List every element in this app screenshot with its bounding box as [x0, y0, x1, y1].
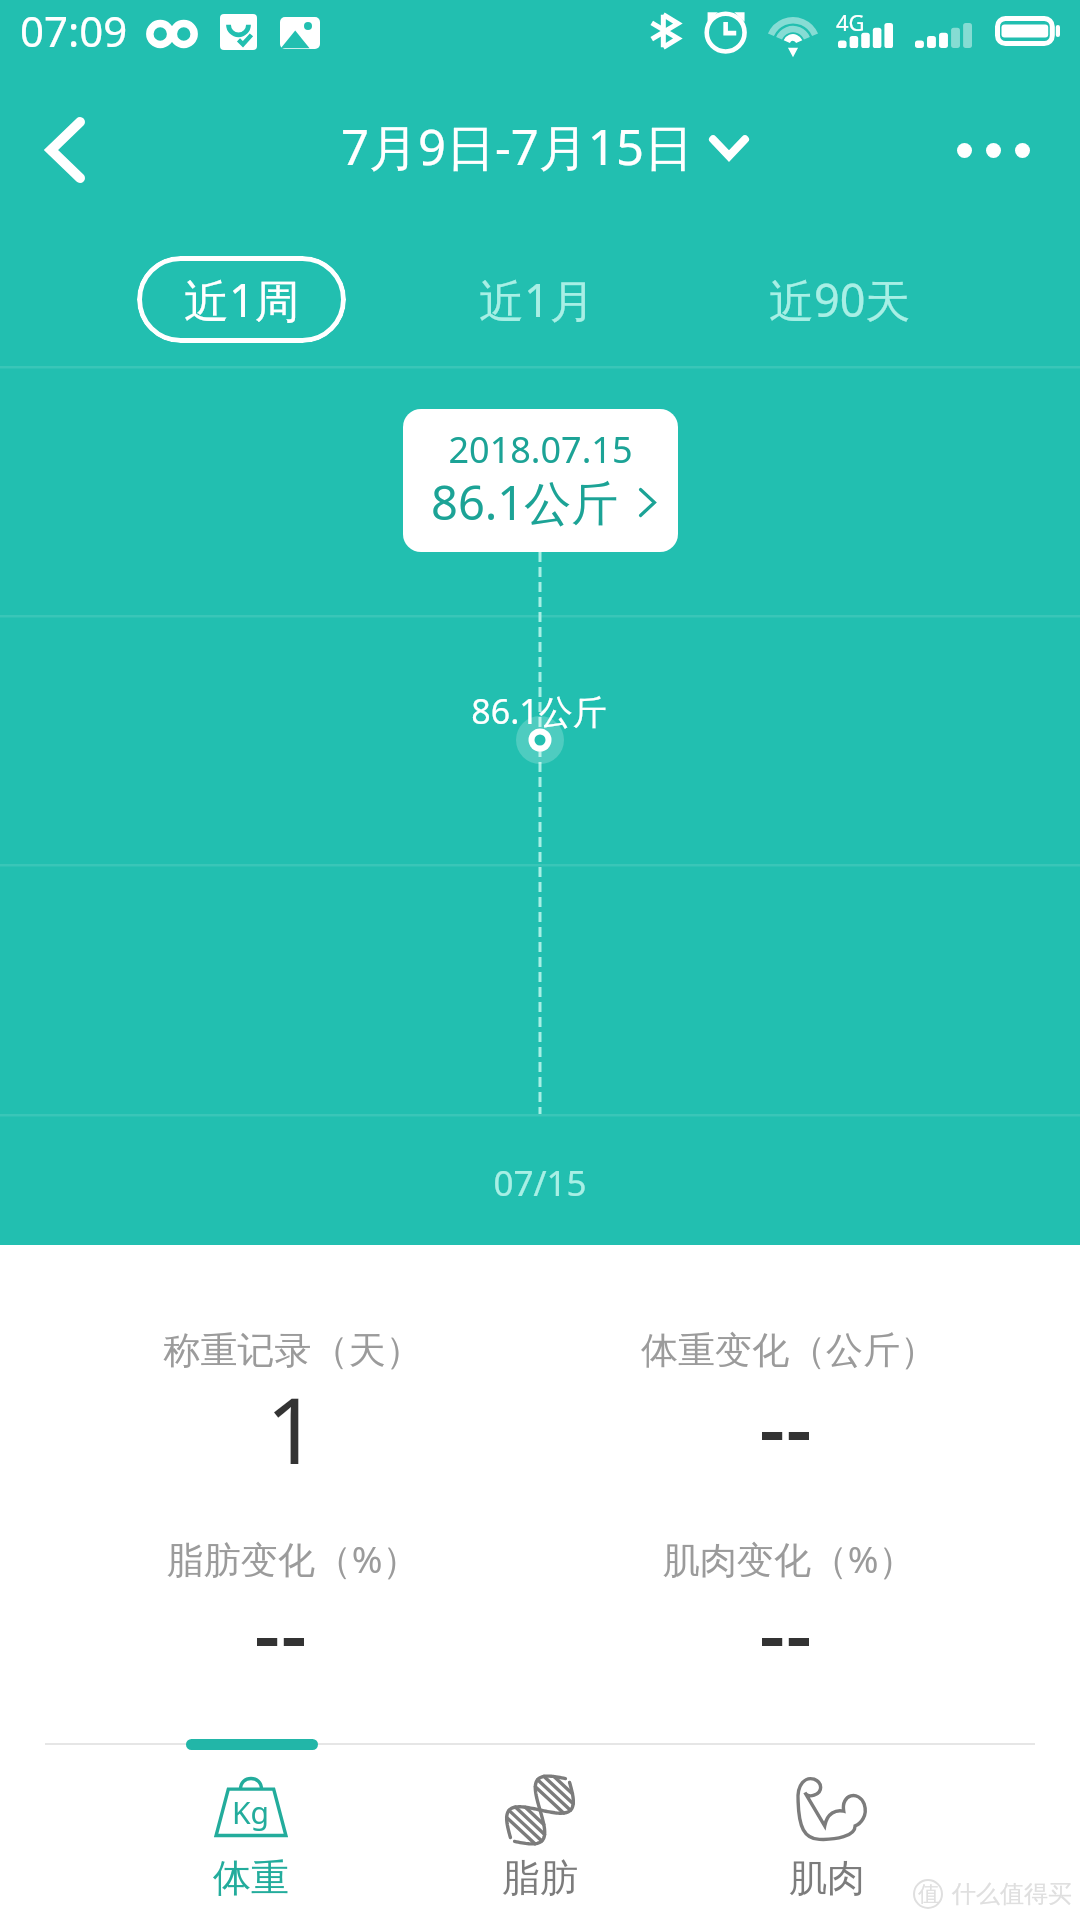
staticText: 值 [918, 1881, 939, 1907]
staticText: 近1月 [479, 269, 595, 330]
button[interactable]: 脂肪 [396, 1750, 684, 1920]
staticText: 7月9日-7月15日 [341, 113, 693, 180]
button[interactable]: Kg [107, 1750, 395, 1920]
button[interactable]: 称重记录（天） [43, 1327, 543, 1477]
button[interactable]: 近1月 [432, 256, 641, 343]
staticText: 近1周 [184, 269, 300, 330]
button[interactable]: 近1周 [137, 256, 346, 343]
staticText: 近90天 [769, 269, 911, 330]
staticText: 07:09 [20, 2, 128, 59]
staticText: 1 [42, 1366, 542, 1491]
staticText: 86.1公斤 [471, 688, 607, 734]
button[interactable]: 肌肉变化（%） [539, 1533, 1039, 1658]
staticText: 86.1公斤 [431, 470, 619, 534]
staticText: 2018.07.15 [403, 425, 678, 474]
staticText: 肌肉变化（%） [539, 1533, 1039, 1584]
button[interactable]: 脂肪变化（%） [43, 1533, 543, 1658]
staticText: 脂肪 [396, 1854, 684, 1902]
button[interactable]: 7月9日-7月15日 [341, 113, 749, 180]
staticText: 称重记录（天） [43, 1327, 543, 1374]
staticText: 脂肪变化（%） [43, 1533, 543, 1584]
staticText: 肌肉 [683, 1854, 971, 1902]
staticText: 什么值得买 [952, 1879, 1072, 1909]
staticText: Kg [232, 1792, 270, 1833]
staticText: 4G [836, 7, 865, 37]
staticText: 体重 [107, 1854, 395, 1902]
button[interactable]: Back [12, 97, 118, 203]
button[interactable]: 近90天 [735, 256, 944, 343]
button[interactable]: 2018.07.15 [403, 409, 678, 552]
button[interactable]: More options [940, 97, 1046, 203]
staticText: 07/15 [493, 1159, 587, 1207]
button[interactable]: 体重变化（公斤） [539, 1327, 1039, 1452]
button[interactable]: 肌肉 [683, 1750, 971, 1920]
staticText: 体重变化（公斤） [539, 1327, 1039, 1374]
